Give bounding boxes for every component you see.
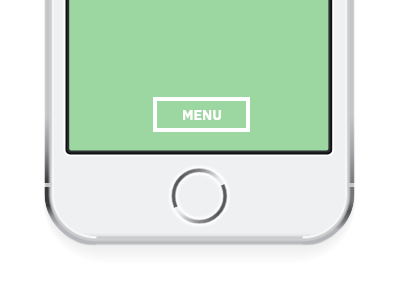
button[interactable]: MENU — [153, 97, 250, 132]
staticText: MENU — [182, 106, 222, 124]
button[interactable]: Home — [169, 166, 229, 226]
